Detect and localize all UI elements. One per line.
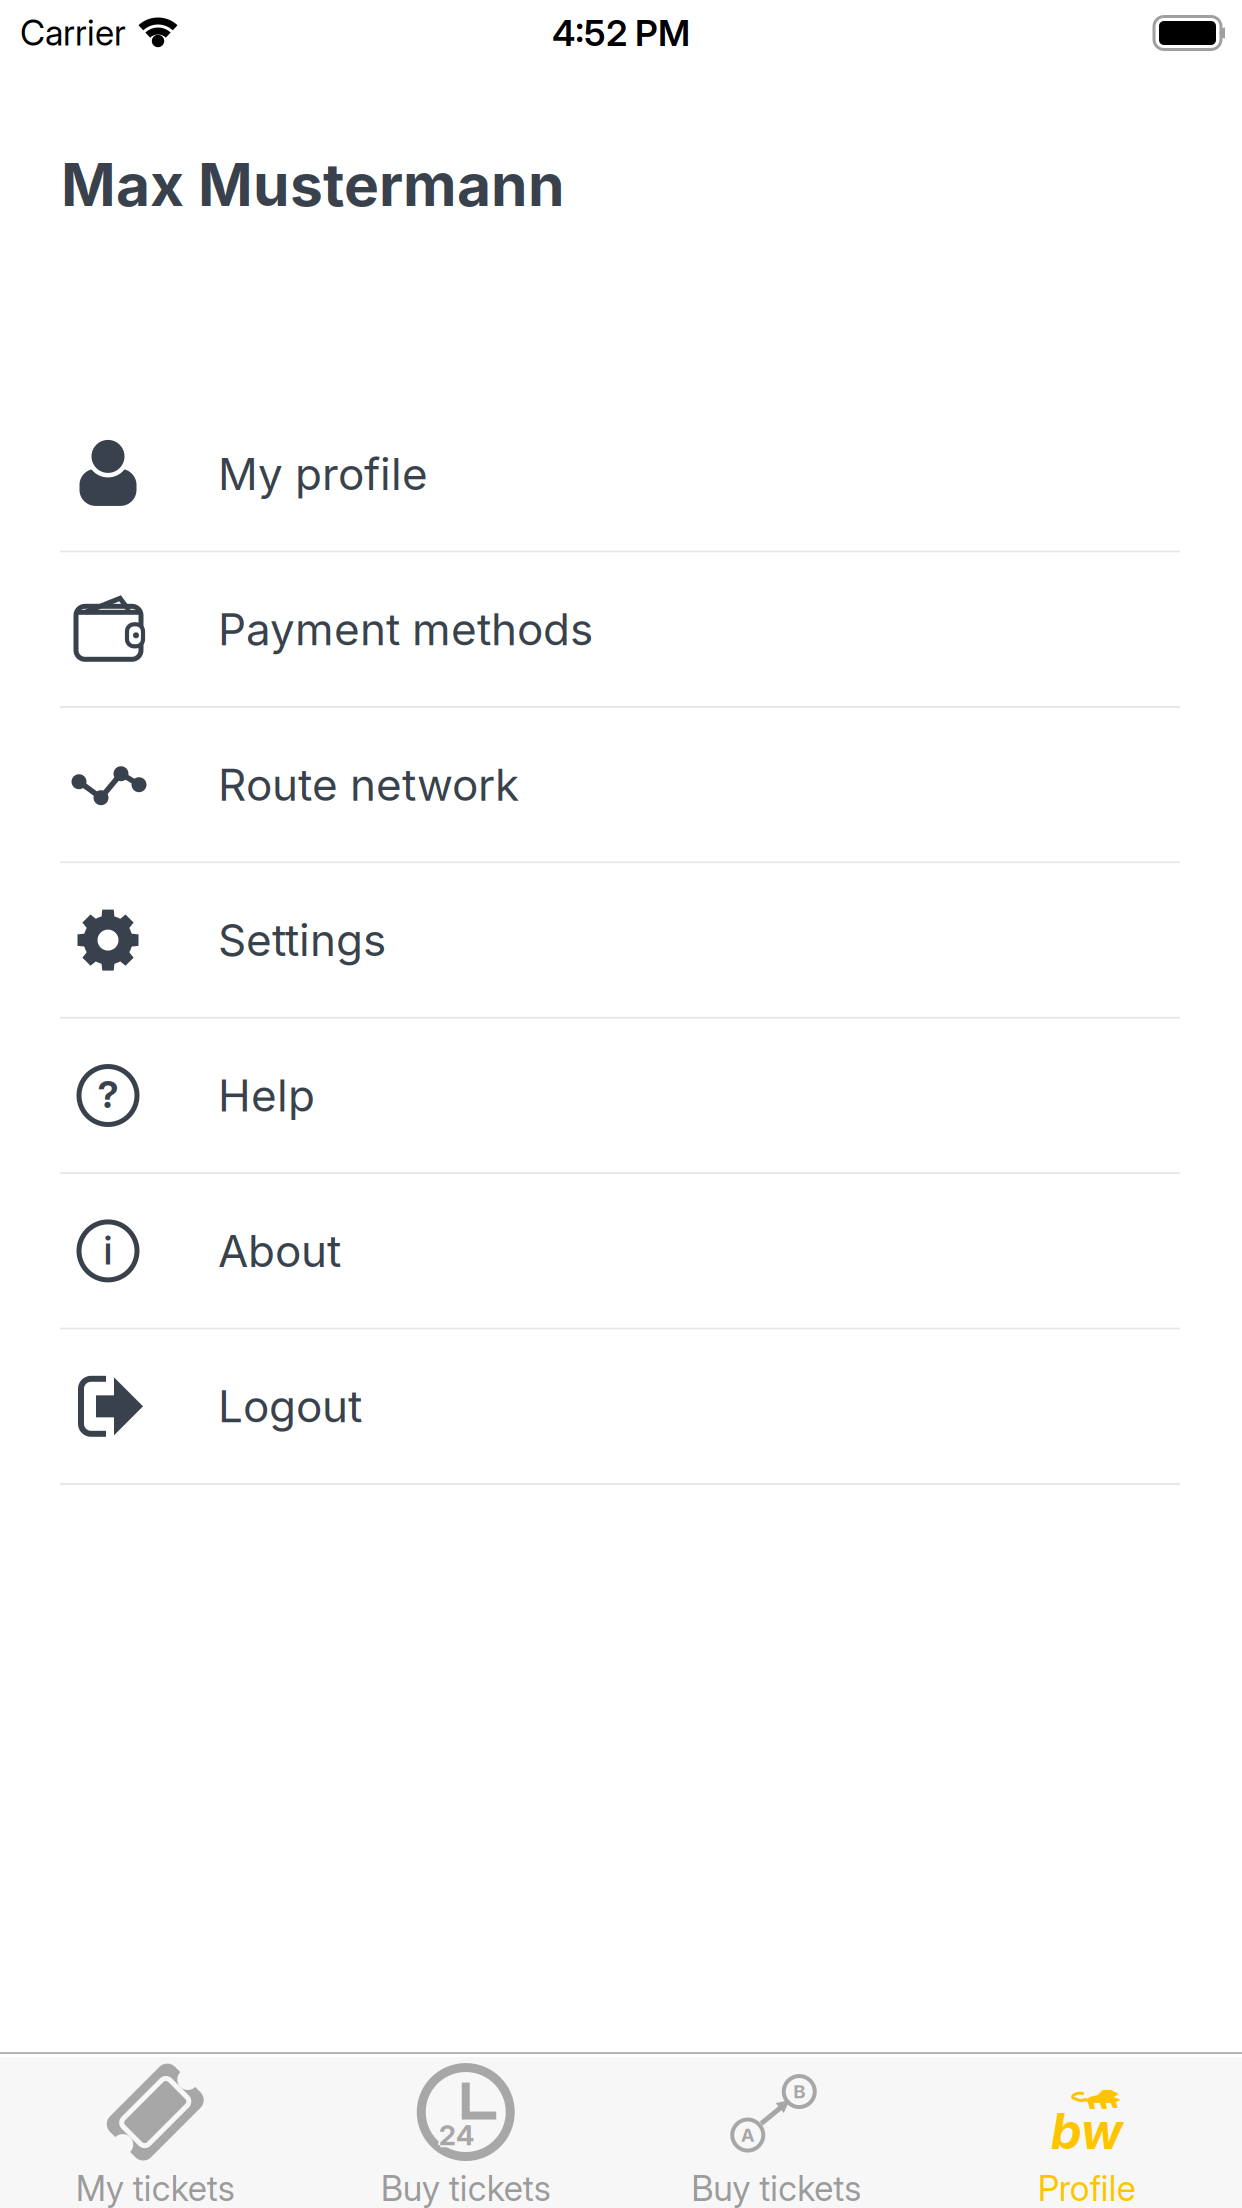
- button[interactable]: i: [0, 1174, 1242, 1328]
- button[interactable]: ?: [0, 1019, 1242, 1172]
- staticText: Carrier: [20, 13, 126, 53]
- staticText: 24: [441, 2118, 477, 2151]
- button[interactable]: Payment methods: [0, 553, 1242, 706]
- staticText: 4:52 PM: [552, 12, 690, 54]
- staticText: i: [103, 1226, 112, 1273]
- staticText: 24: [439, 2120, 475, 2153]
- staticText: Logout: [218, 1380, 362, 1432]
- staticText: Buy tickets: [381, 2168, 551, 2208]
- button[interactable]: A: [621, 2054, 931, 2205]
- staticText: B: [793, 2080, 805, 2102]
- button[interactable]: bw: [931, 2054, 1242, 2205]
- button[interactable]: My profile: [0, 397, 1242, 551]
- staticText: Payment methods: [218, 603, 593, 655]
- staticText: ?: [97, 1072, 118, 1116]
- button[interactable]: Logout: [0, 1330, 1242, 1483]
- button[interactable]: My tickets: [0, 2054, 310, 2205]
- staticText: Buy tickets: [691, 2168, 861, 2208]
- staticText: My profile: [218, 448, 428, 500]
- staticText: Settings: [218, 914, 386, 966]
- button[interactable]: Settings: [0, 863, 1242, 1017]
- staticText: 24: [439, 2118, 475, 2151]
- staticText: My tickets: [76, 2168, 235, 2208]
- staticText: 24: [437, 2118, 473, 2151]
- staticText: bw: [1051, 2102, 1123, 2160]
- staticText: Profile: [1038, 2168, 1136, 2208]
- staticText: Max Mustermann: [61, 150, 565, 219]
- staticText: Help: [218, 1070, 315, 1121]
- staticText: 24: [439, 2116, 475, 2149]
- button[interactable]: Route network: [0, 708, 1242, 861]
- staticText: A: [741, 2124, 755, 2146]
- staticText: About: [218, 1225, 341, 1277]
- button[interactable]: 24: [310, 2054, 621, 2205]
- staticText: Route network: [218, 759, 519, 811]
